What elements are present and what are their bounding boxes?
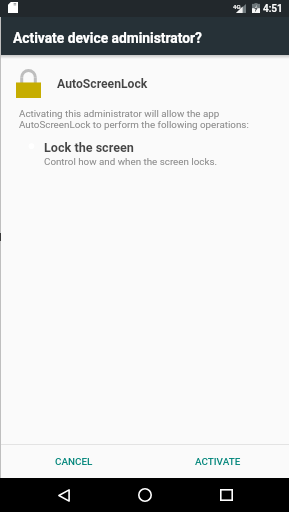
staticText: CANCEL <box>55 456 93 468</box>
staticText: Lock the screen <box>44 140 134 155</box>
staticText: Activating this administrator will allow… <box>19 108 249 130</box>
button[interactable]: Home <box>121 478 169 512</box>
staticText: Activate device administrator? <box>13 30 202 46</box>
staticText: AutoScreenLock <box>57 77 148 91</box>
staticText: 4:51 <box>263 3 283 15</box>
staticText: 4G <box>233 3 241 10</box>
button[interactable]: ACTIVATE <box>185 451 251 473</box>
button[interactable]: Back <box>40 478 88 512</box>
staticText: ACTIVATE <box>195 456 241 468</box>
button[interactable]: CANCEL <box>45 451 103 473</box>
button[interactable]: Recents <box>202 478 250 512</box>
staticText: Control how and when the screen locks. <box>44 156 218 167</box>
